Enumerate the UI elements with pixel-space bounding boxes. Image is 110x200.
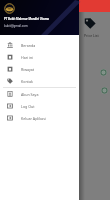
button[interactable]: Beranda [0, 39, 79, 51]
staticText: Hari ini [21, 55, 34, 60]
staticText: Log Out [21, 104, 35, 109]
button[interactable]: WhatsApp [100, 69, 107, 76]
button[interactable]: Riwayat [0, 63, 79, 75]
button[interactable]: Kontak [0, 75, 79, 87]
button[interactable]: Akun Saya [0, 88, 79, 100]
staticText: Kontak [21, 79, 33, 84]
staticText: Keluar Aplikasi [21, 116, 46, 121]
staticText: Beranda [21, 43, 36, 48]
button[interactable]: Hari ini [0, 51, 79, 63]
staticText: Riwayat [21, 67, 35, 72]
staticText: bukit@gmail.com [4, 24, 28, 28]
staticText: PT Bukit Makmur Mandiri Utama [4, 17, 50, 21]
staticText: Price List [84, 33, 99, 38]
button[interactable]: Log Out [0, 100, 79, 112]
button[interactable]: Price List [80, 13, 108, 38]
button[interactable]: Call [101, 87, 108, 94]
staticText: Akun Saya [21, 92, 39, 97]
button[interactable]: Keluar Aplikasi [0, 112, 79, 124]
